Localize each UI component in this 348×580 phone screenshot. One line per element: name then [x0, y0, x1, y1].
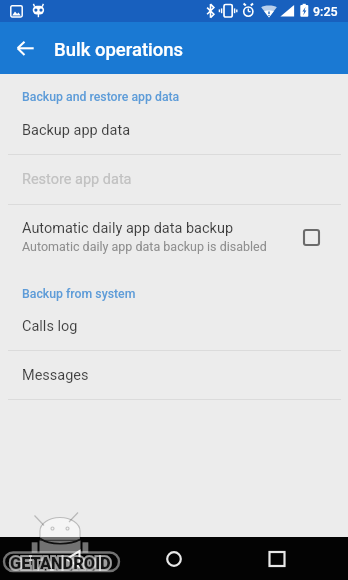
- button[interactable]: Recent apps: [226, 537, 327, 580]
- staticText: GETANDROID: [10, 554, 111, 573]
- button[interactable]: Home: [123, 537, 224, 580]
- staticText: Backup from system: [22, 287, 136, 301]
- staticText: Automatic daily app data backup: [22, 220, 234, 237]
- staticText: Backup and restore app data: [22, 90, 180, 104]
- staticText: 9:25: [313, 4, 338, 19]
- staticText: Messages: [22, 367, 89, 384]
- button[interactable]: Navigate up: [0, 22, 52, 74]
- button[interactable]: Calls log: [0, 303, 348, 350]
- button[interactable]: Messages: [0, 351, 348, 399]
- button[interactable]: Back: [22, 537, 123, 580]
- button[interactable]: Restore app data: [0, 155, 348, 204]
- staticText: Bulk operations: [54, 39, 184, 61]
- staticText: Backup app data: [22, 122, 131, 139]
- button[interactable]: Backup app data: [0, 106, 348, 154]
- staticText: Restore app data: [22, 171, 132, 188]
- staticText: GETANDROID: [10, 554, 111, 573]
- staticText: Calls log: [22, 318, 78, 335]
- staticText: Automatic daily app data backup is disab…: [22, 239, 267, 254]
- button[interactable]: Automatic daily app data backup: [0, 205, 348, 269]
